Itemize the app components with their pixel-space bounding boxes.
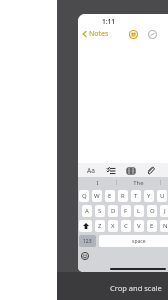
button[interactable]: O (147, 205, 157, 217)
button[interactable]: J (160, 205, 168, 217)
button[interactable]: E (105, 190, 115, 202)
staticText: space (132, 238, 146, 245)
staticText: W (94, 192, 100, 200)
button[interactable]: C (121, 220, 131, 232)
staticText: T (134, 192, 138, 200)
staticText: O (150, 207, 155, 215)
staticText: F (124, 207, 128, 215)
staticText: S (98, 207, 102, 215)
staticText: L (137, 207, 141, 215)
button[interactable]: Y (144, 190, 154, 202)
button[interactable]: Compose (146, 28, 158, 40)
button[interactable]: I (78, 177, 116, 188)
staticText: E (108, 192, 112, 200)
button[interactable]: V (134, 220, 144, 232)
staticText: C (124, 222, 128, 230)
button[interactable]: Attach (145, 165, 156, 176)
button[interactable]: N (160, 220, 168, 232)
staticText: 123 (83, 238, 92, 245)
staticText: N (163, 222, 168, 230)
button[interactable]: The (117, 177, 160, 188)
button[interactable]: Emoji (80, 251, 90, 261)
button[interactable]: Checklist (105, 165, 116, 176)
button[interactable]: X (108, 220, 118, 232)
button[interactable]: T (131, 190, 141, 202)
button[interactable]: D (108, 205, 118, 217)
staticText: D (111, 207, 116, 215)
staticText: Aa (87, 166, 95, 175)
staticText: R (121, 192, 125, 200)
staticText: A (85, 207, 89, 215)
button[interactable]: R (118, 190, 128, 202)
button[interactable]: E (147, 220, 157, 232)
button[interactable]: S (95, 205, 105, 217)
button[interactable]: 1:11 (78, 14, 168, 272)
button[interactable]: 123 (79, 235, 96, 247)
staticText: E (150, 222, 154, 230)
staticText: V (137, 222, 141, 230)
button[interactable]: U (157, 190, 167, 202)
button[interactable]: F (121, 205, 131, 217)
button[interactable]: Text format (86, 165, 96, 176)
staticText: 1:11 (102, 17, 115, 26)
staticText: I (96, 179, 99, 187)
staticText: Notes (89, 29, 109, 39)
staticText: Z (98, 222, 102, 230)
button[interactable]: Notes (81, 27, 110, 41)
button[interactable]: Table (125, 165, 136, 176)
staticText: Y (147, 192, 151, 200)
staticText: J (164, 207, 166, 215)
staticText: U (160, 192, 165, 200)
button[interactable]: Shift (79, 220, 92, 232)
button[interactable]: Markup (127, 28, 139, 40)
button[interactable]: A (82, 205, 92, 217)
staticText: The (133, 179, 144, 187)
button[interactable]: space (99, 235, 168, 247)
button[interactable]: Q (79, 190, 89, 202)
staticText: Crop and scale (110, 283, 162, 293)
button[interactable]: W (92, 190, 102, 202)
staticText: Q (82, 192, 87, 200)
button[interactable]: Z (95, 220, 105, 232)
button[interactable]: L (134, 205, 144, 217)
staticText: X (111, 222, 115, 230)
